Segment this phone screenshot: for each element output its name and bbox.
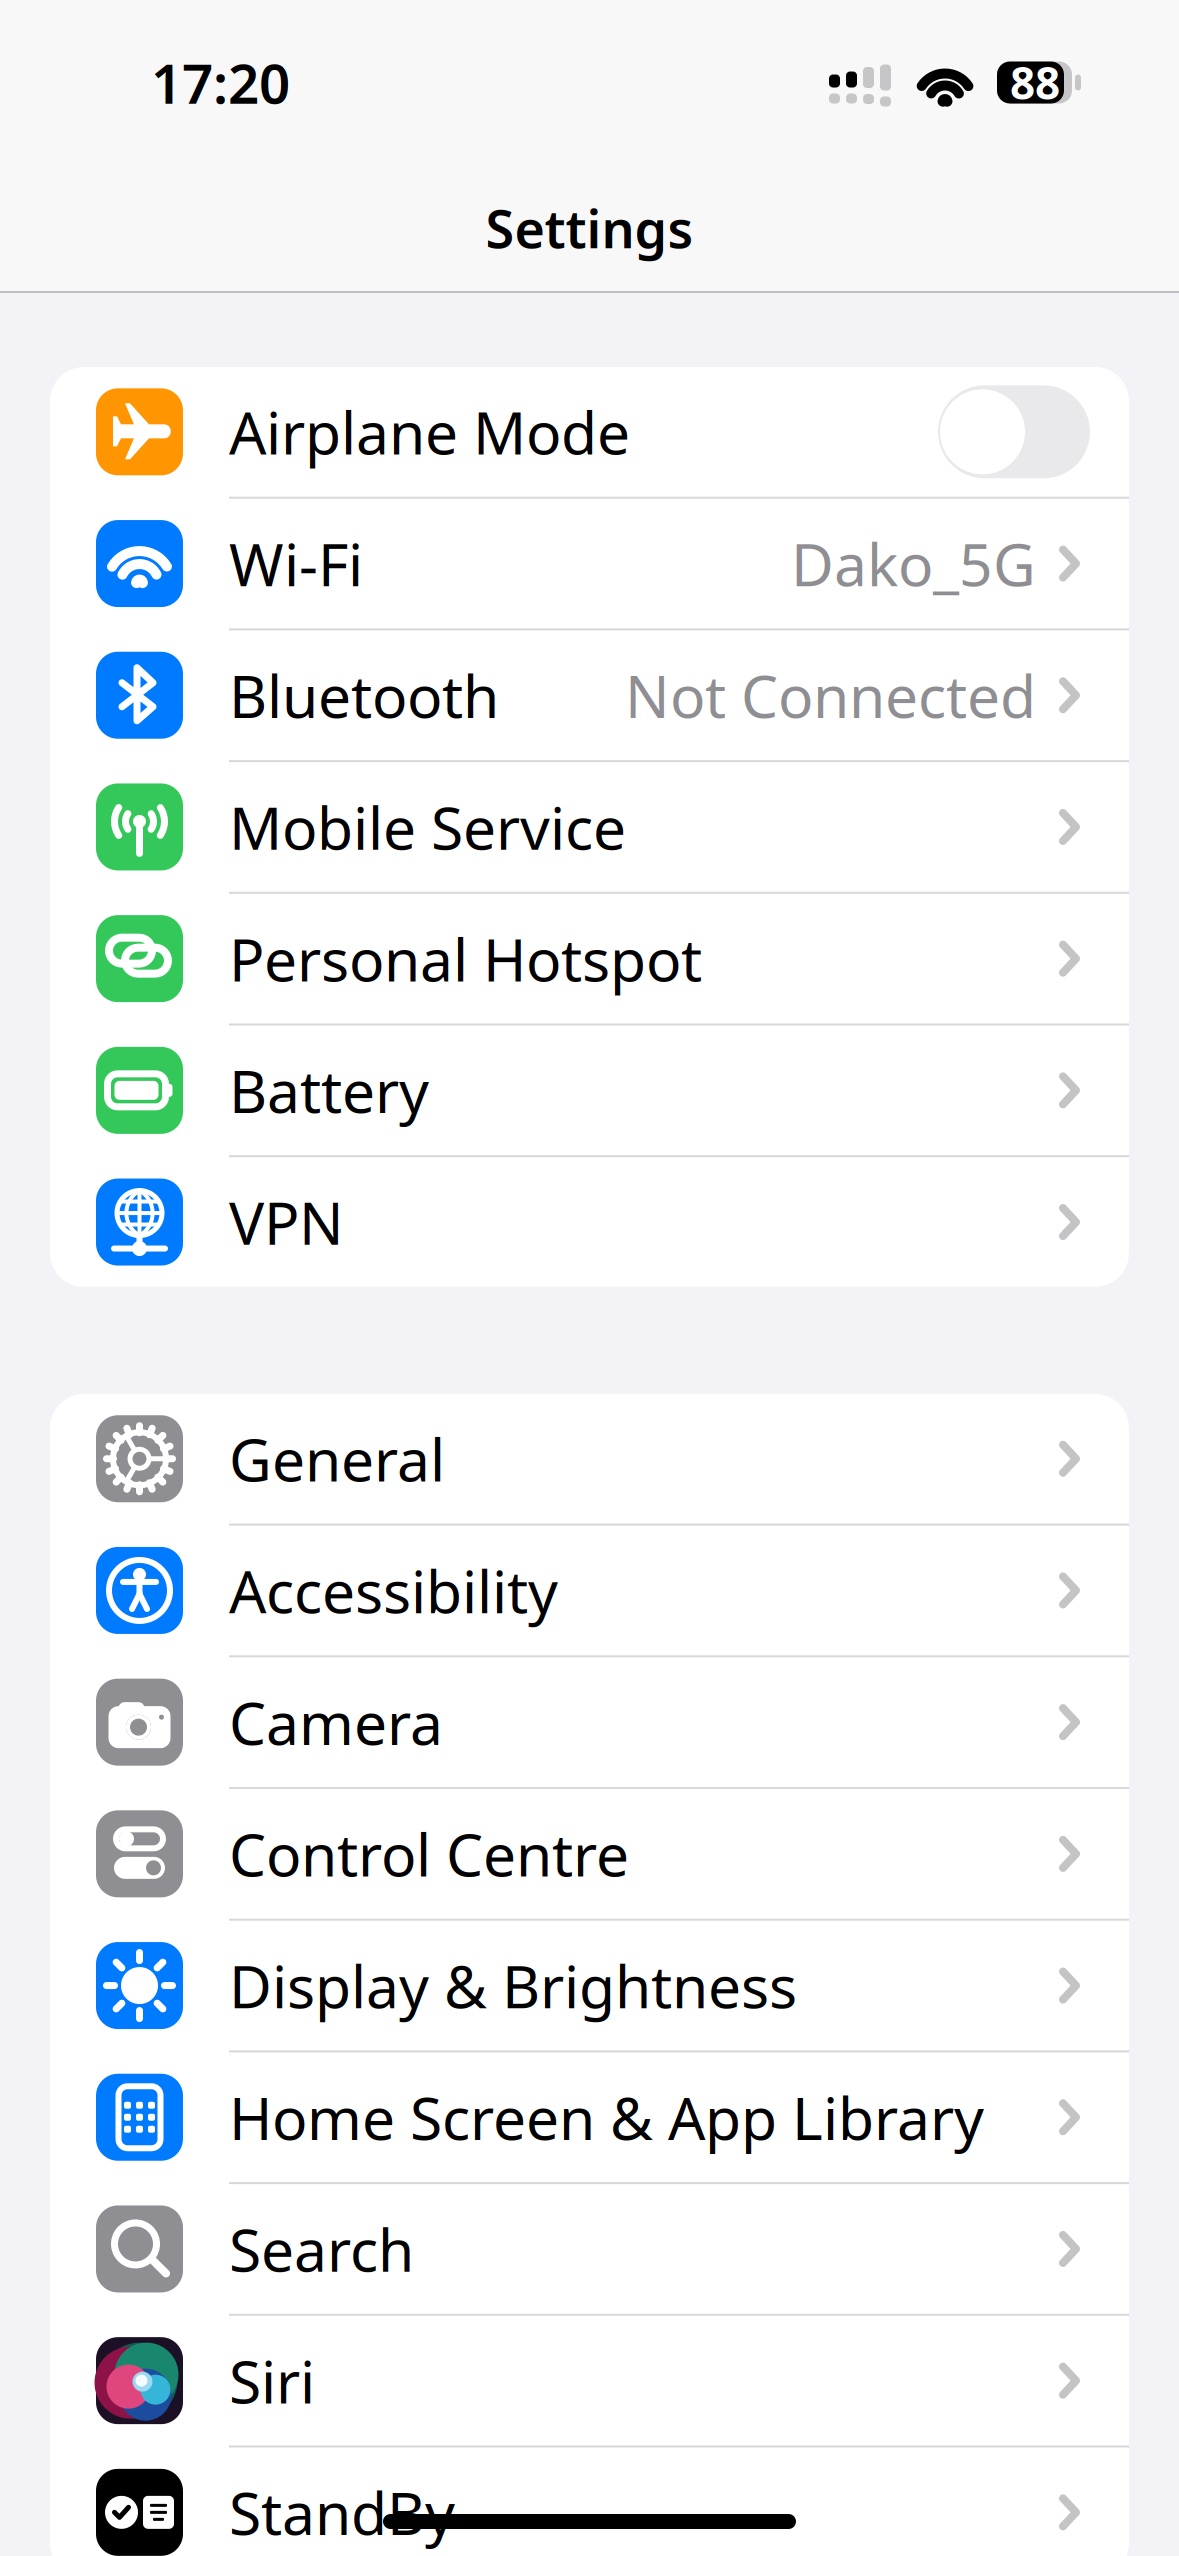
button[interactable]: VPN bbox=[50, 1157, 1129, 1287]
staticText: Search bbox=[229, 2210, 414, 2288]
staticText: 88 bbox=[1010, 53, 1060, 112]
staticText: Airplane Mode bbox=[229, 393, 630, 471]
staticText: Settings bbox=[485, 193, 693, 263]
button[interactable]: StandBy bbox=[50, 2447, 1129, 2556]
button[interactable]: Airplane Mode bbox=[50, 367, 1129, 497]
button[interactable]: Home Screen & App Library bbox=[50, 2052, 1129, 2182]
staticText: Camera bbox=[229, 1683, 443, 1761]
staticText: Not Connected bbox=[625, 656, 1036, 734]
staticText: Accessibility bbox=[229, 1551, 558, 1629]
staticText: Wi-Fi bbox=[229, 525, 363, 602]
button[interactable]: Accessibility bbox=[50, 1526, 1129, 1655]
staticText: Display & Brightness bbox=[229, 1947, 797, 2024]
staticText: Battery bbox=[229, 1051, 429, 1129]
staticText: General bbox=[229, 1420, 445, 1498]
staticText: StandBy bbox=[229, 2473, 455, 2551]
staticText: Control Centre bbox=[229, 1815, 629, 1893]
button[interactable]: Wi-Fi bbox=[50, 499, 1129, 628]
staticText: Mobile Service bbox=[229, 788, 626, 866]
button[interactable]: Personal Hotspot bbox=[50, 894, 1129, 1023]
staticText: Bluetooth bbox=[229, 656, 499, 734]
staticText: Personal Hotspot bbox=[229, 920, 702, 998]
staticText: VPN bbox=[229, 1183, 344, 1261]
button[interactable]: Siri bbox=[50, 2316, 1129, 2445]
staticText: Dako_5G bbox=[791, 525, 1036, 602]
staticText: Home Screen & App Library bbox=[229, 2078, 984, 2156]
button[interactable]: Search bbox=[50, 2184, 1129, 2314]
staticText: 17:20 bbox=[151, 46, 290, 119]
button[interactable]: Control Centre bbox=[50, 1789, 1129, 1919]
button[interactable]: General bbox=[50, 1394, 1129, 1524]
button[interactable]: Battery bbox=[50, 1025, 1129, 1155]
button[interactable]: Camera bbox=[50, 1657, 1129, 1787]
button[interactable]: Display & Brightness bbox=[50, 1921, 1129, 2050]
button[interactable]: Mobile Service bbox=[50, 762, 1129, 892]
button[interactable]: Bluetooth bbox=[50, 630, 1129, 760]
staticText: Siri bbox=[229, 2342, 315, 2420]
